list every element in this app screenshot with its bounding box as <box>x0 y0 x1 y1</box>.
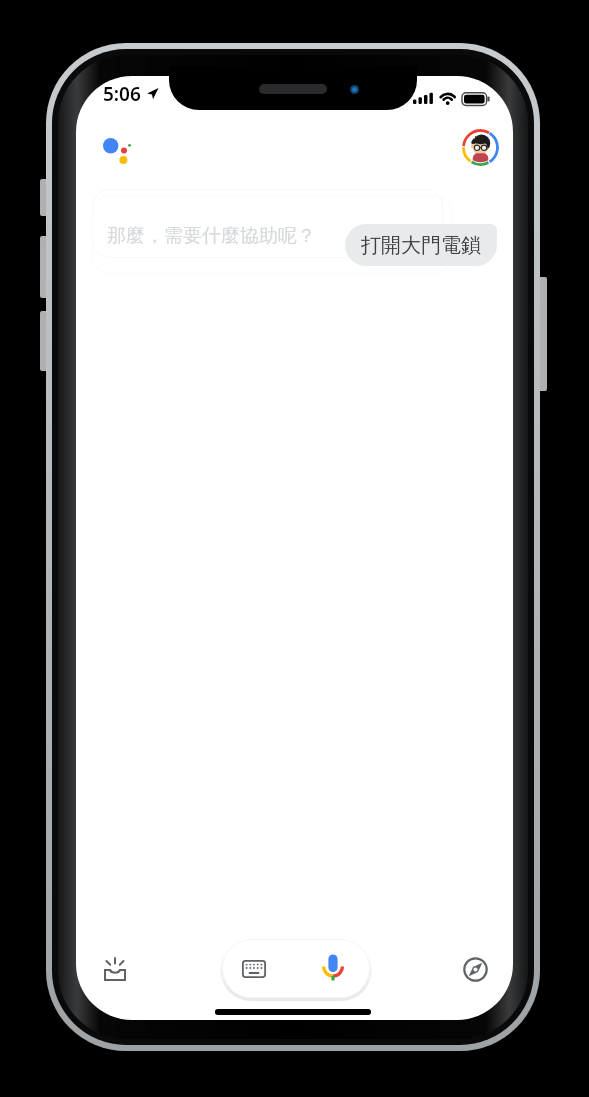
button[interactable]: 打開大門電鎖 <box>345 224 497 266</box>
button[interactable] <box>102 955 128 981</box>
staticText: 打開大門電鎖 <box>361 233 481 258</box>
button[interactable] <box>242 960 266 978</box>
staticText: 5:06 <box>103 81 141 107</box>
button[interactable] <box>462 956 489 983</box>
button[interactable] <box>319 951 347 984</box>
button[interactable] <box>462 129 499 166</box>
staticText: 那麼，需要什麼協助呢？ <box>107 224 316 248</box>
